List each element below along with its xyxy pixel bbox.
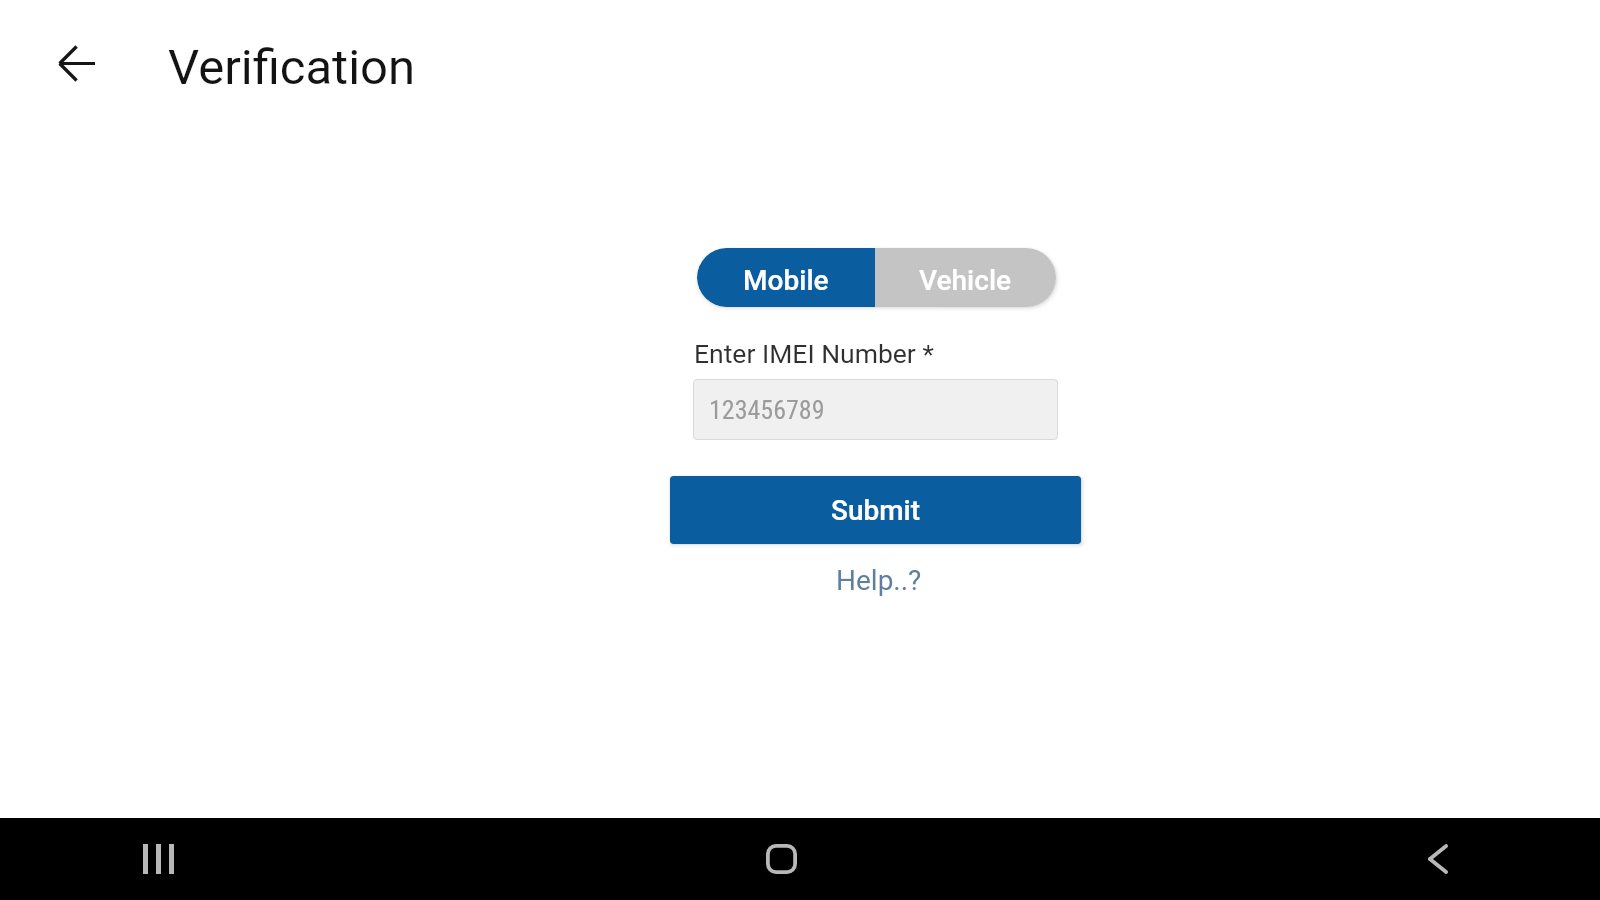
staticText: Verification bbox=[168, 39, 416, 96]
staticText: Mobile bbox=[743, 264, 829, 297]
staticText: 123456789 bbox=[709, 395, 825, 425]
button[interactable]: Back bbox=[1408, 840, 1468, 878]
staticText: Submit bbox=[831, 494, 921, 527]
staticText: Enter IMEI Number * bbox=[694, 338, 934, 369]
button[interactable]: Help..? bbox=[824, 556, 934, 605]
button[interactable]: Back bbox=[48, 35, 104, 91]
staticText: Help..? bbox=[836, 564, 922, 597]
button[interactable]: 123456789 bbox=[693, 379, 1058, 440]
button[interactable]: Vehicle bbox=[875, 248, 1056, 307]
staticText: Vehicle bbox=[919, 264, 1012, 297]
button[interactable]: Submit bbox=[670, 476, 1081, 544]
button[interactable]: Home bbox=[751, 840, 811, 878]
button[interactable]: Recent apps bbox=[128, 840, 188, 878]
button[interactable]: Mobile bbox=[697, 248, 875, 307]
